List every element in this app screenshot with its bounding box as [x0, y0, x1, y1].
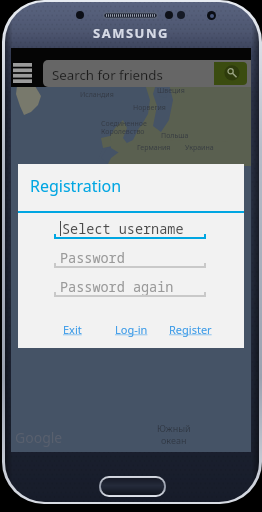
button[interactable]: Home [99, 476, 166, 497]
button[interactable]: Exit [60, 319, 85, 340]
button[interactable]: Password again [54, 277, 206, 296]
staticText: Норвегия [133, 103, 166, 113]
staticText: Исландия [80, 90, 114, 100]
staticText: Соединенное [101, 119, 147, 129]
staticText: SAMSUNG [93, 24, 169, 42]
staticText: Германия [137, 143, 171, 153]
button[interactable]: Register [166, 319, 215, 340]
button[interactable]: Log-in [112, 319, 151, 340]
staticText: Registration [30, 175, 122, 197]
button[interactable]: Search [214, 62, 247, 85]
button[interactable]: Menu [11, 60, 34, 86]
staticText: Google [15, 428, 63, 447]
staticText: Exit [63, 322, 82, 337]
staticText: Password again [60, 278, 174, 296]
staticText: Королевство [101, 127, 145, 137]
staticText: Южный [157, 422, 191, 434]
staticText: океан [161, 434, 187, 446]
staticText: Search for friends [52, 66, 163, 84]
staticText: Польша [161, 131, 189, 141]
button[interactable]: Search for friends [43, 60, 251, 87]
staticText: Password [60, 249, 125, 267]
staticText: Register [169, 322, 212, 337]
staticText: Швеция [157, 86, 185, 96]
staticText: Log-in [115, 322, 148, 337]
button[interactable]: Select username [54, 219, 206, 238]
button[interactable]: Password [54, 248, 206, 267]
staticText: Украина [185, 143, 214, 153]
staticText: Select username [62, 220, 184, 238]
